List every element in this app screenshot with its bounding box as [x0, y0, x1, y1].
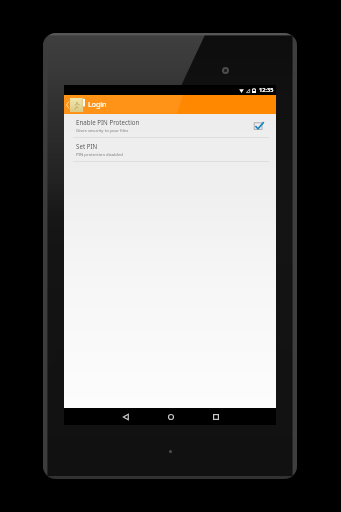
- staticText: 12:35: [259, 86, 274, 94]
- staticText: Enable PIN Protection: [76, 118, 140, 126]
- staticText: Set PIN: [76, 142, 98, 150]
- button[interactable]: Home: [162, 408, 179, 425]
- staticText: PIN protection disabled: [76, 151, 123, 157]
- button[interactable]: Enable PIN Protection: [64, 114, 276, 137]
- staticText: Gives security to your files: [76, 127, 129, 133]
- button[interactable]: Navigate up: [64, 95, 70, 114]
- button[interactable]: Recent apps: [207, 408, 224, 425]
- button[interactable]: Back: [117, 408, 134, 425]
- button[interactable]: Set PIN: [64, 138, 276, 161]
- button[interactable]: Enabled: [253, 120, 264, 131]
- staticText: Login: [88, 100, 107, 110]
